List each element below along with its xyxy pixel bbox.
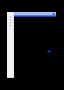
button[interactable] (7, 21, 14, 24)
button[interactable]: Top app bar (14, 12, 56, 17)
button[interactable]: Account (52, 13, 55, 16)
button[interactable] (7, 18, 14, 21)
button[interactable] (7, 24, 14, 27)
button[interactable]: Action (47, 50, 51, 53)
button[interactable] (7, 15, 14, 18)
